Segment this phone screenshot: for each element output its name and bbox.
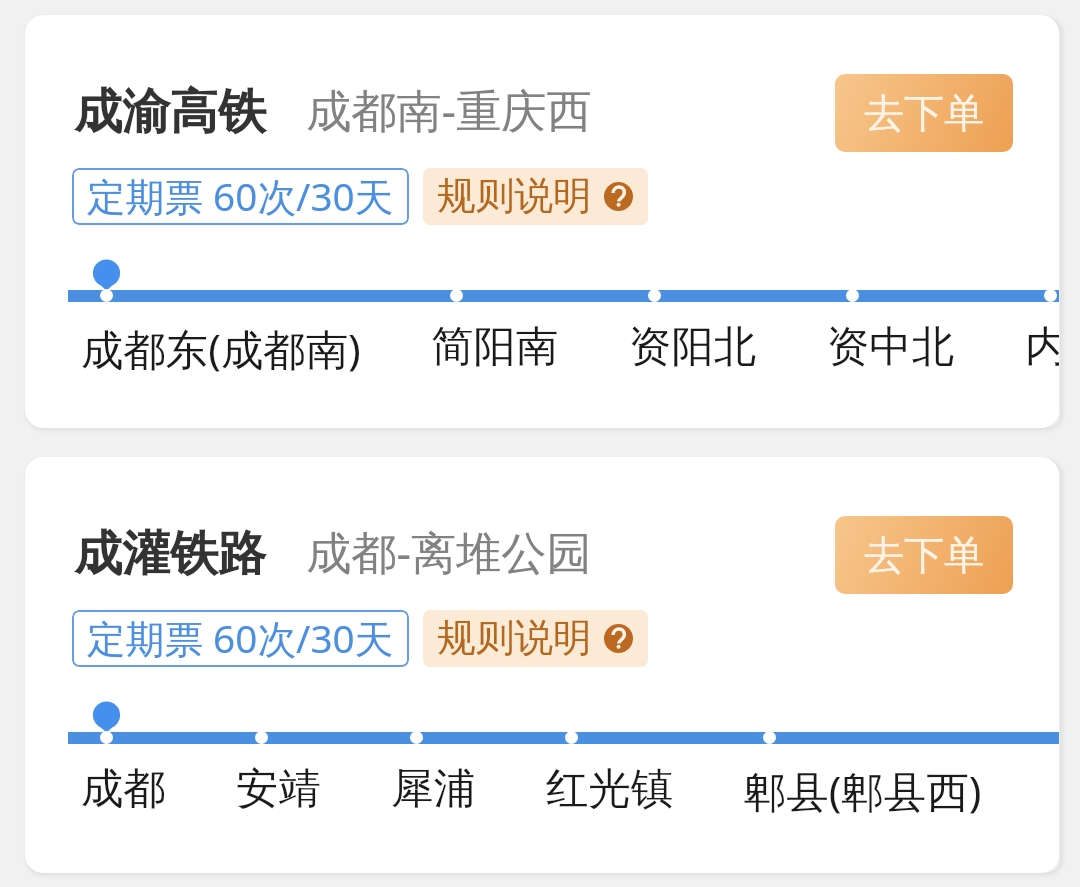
staticText: 规则说明 [437, 614, 592, 663]
button[interactable]: 去下单 [835, 74, 1013, 152]
staticText: 成渝高铁 [74, 82, 266, 142]
button[interactable]: 资阳北 [629, 240, 757, 373]
button[interactable]: 规则说明 [437, 610, 633, 667]
staticText: 成都南-重庆西 [306, 79, 592, 141]
staticText: 成灌铁路 [74, 524, 266, 584]
other: Rules help [604, 624, 633, 653]
button[interactable]: 成渝高铁 [25, 15, 1059, 428]
staticText: 去下单 [864, 88, 984, 138]
button[interactable]: 成都 [81, 682, 166, 815]
other: Rules help [604, 182, 633, 211]
button[interactable]: 规则说明 [437, 168, 633, 225]
staticText: 资阳北 [629, 320, 757, 373]
button[interactable]: 红光镇 [546, 682, 674, 815]
staticText: 成都东(成都南) [81, 320, 361, 378]
staticText: 安靖 [236, 762, 321, 815]
staticText: 简阳南 [431, 320, 559, 373]
button[interactable]: 成灌铁路 [25, 457, 1059, 873]
staticText: 犀浦 [391, 762, 476, 815]
staticText: 内江北 [1025, 320, 1059, 373]
button[interactable]: 郫县(郫县西) [744, 682, 982, 820]
staticText: 成都 [81, 762, 166, 815]
staticText: 资中北 [827, 320, 955, 373]
staticText: 郫县(郫县西) [744, 762, 982, 820]
button[interactable]: 资中北 [827, 240, 955, 373]
button[interactable]: 简阳南 [431, 240, 559, 373]
button[interactable]: 去下单 [835, 516, 1013, 594]
button[interactable]: 安靖 [236, 682, 321, 815]
button[interactable]: 内江北 [1025, 240, 1059, 373]
staticText: 定期票 60次/30天 [87, 612, 394, 665]
staticText: 成都-离堆公园 [306, 521, 592, 583]
staticText: 红光镇 [546, 762, 674, 815]
button[interactable]: 犀浦 [391, 682, 476, 815]
button[interactable]: 定期票 60次/30天 [87, 610, 394, 667]
staticText: 去下单 [864, 530, 984, 580]
button[interactable]: 成都东(成都南) [81, 240, 361, 378]
button[interactable]: 定期票 60次/30天 [87, 168, 394, 225]
staticText: 规则说明 [437, 172, 592, 221]
staticText: 定期票 60次/30天 [87, 170, 394, 223]
